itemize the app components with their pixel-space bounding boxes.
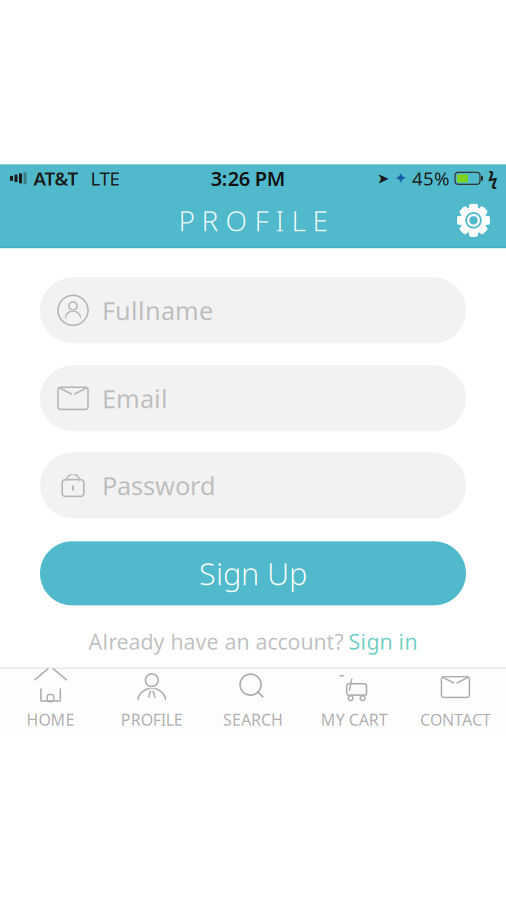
staticText: 45%: [412, 166, 450, 191]
staticText: Sign Up: [199, 553, 307, 594]
staticText: ✦: [394, 169, 407, 187]
staticText: Email: [102, 381, 168, 415]
staticText: Sign in: [348, 627, 417, 656]
staticText: CONTACT: [420, 709, 491, 730]
staticText: MY CART: [321, 709, 388, 730]
button[interactable]: Settings: [445, 196, 506, 245]
staticText: LTE: [80, 166, 119, 191]
staticText: Fullname: [102, 293, 213, 327]
staticText: HOME: [27, 709, 75, 730]
button[interactable]: SEARCH: [202, 662, 304, 742]
staticText: Password: [102, 468, 216, 502]
staticText: P R O F I L E: [178, 202, 327, 239]
staticText: Already have an account?: [88, 627, 343, 656]
button[interactable]: MY CART: [304, 662, 405, 742]
button[interactable]: Already have an account?: [40, 623, 466, 660]
button[interactable]: CONTACT: [405, 662, 506, 742]
staticText: AT&T: [28, 166, 78, 191]
button[interactable]: Sign Up: [40, 541, 466, 605]
staticText: 3:26 PM: [211, 165, 286, 192]
button[interactable]: PROFILE: [101, 662, 202, 742]
staticText: SEARCH: [223, 709, 283, 730]
staticText: ϟ: [488, 167, 498, 190]
button[interactable]: HOME: [0, 662, 101, 742]
staticText: ➤: [377, 170, 389, 187]
staticText: PROFILE: [121, 709, 183, 730]
